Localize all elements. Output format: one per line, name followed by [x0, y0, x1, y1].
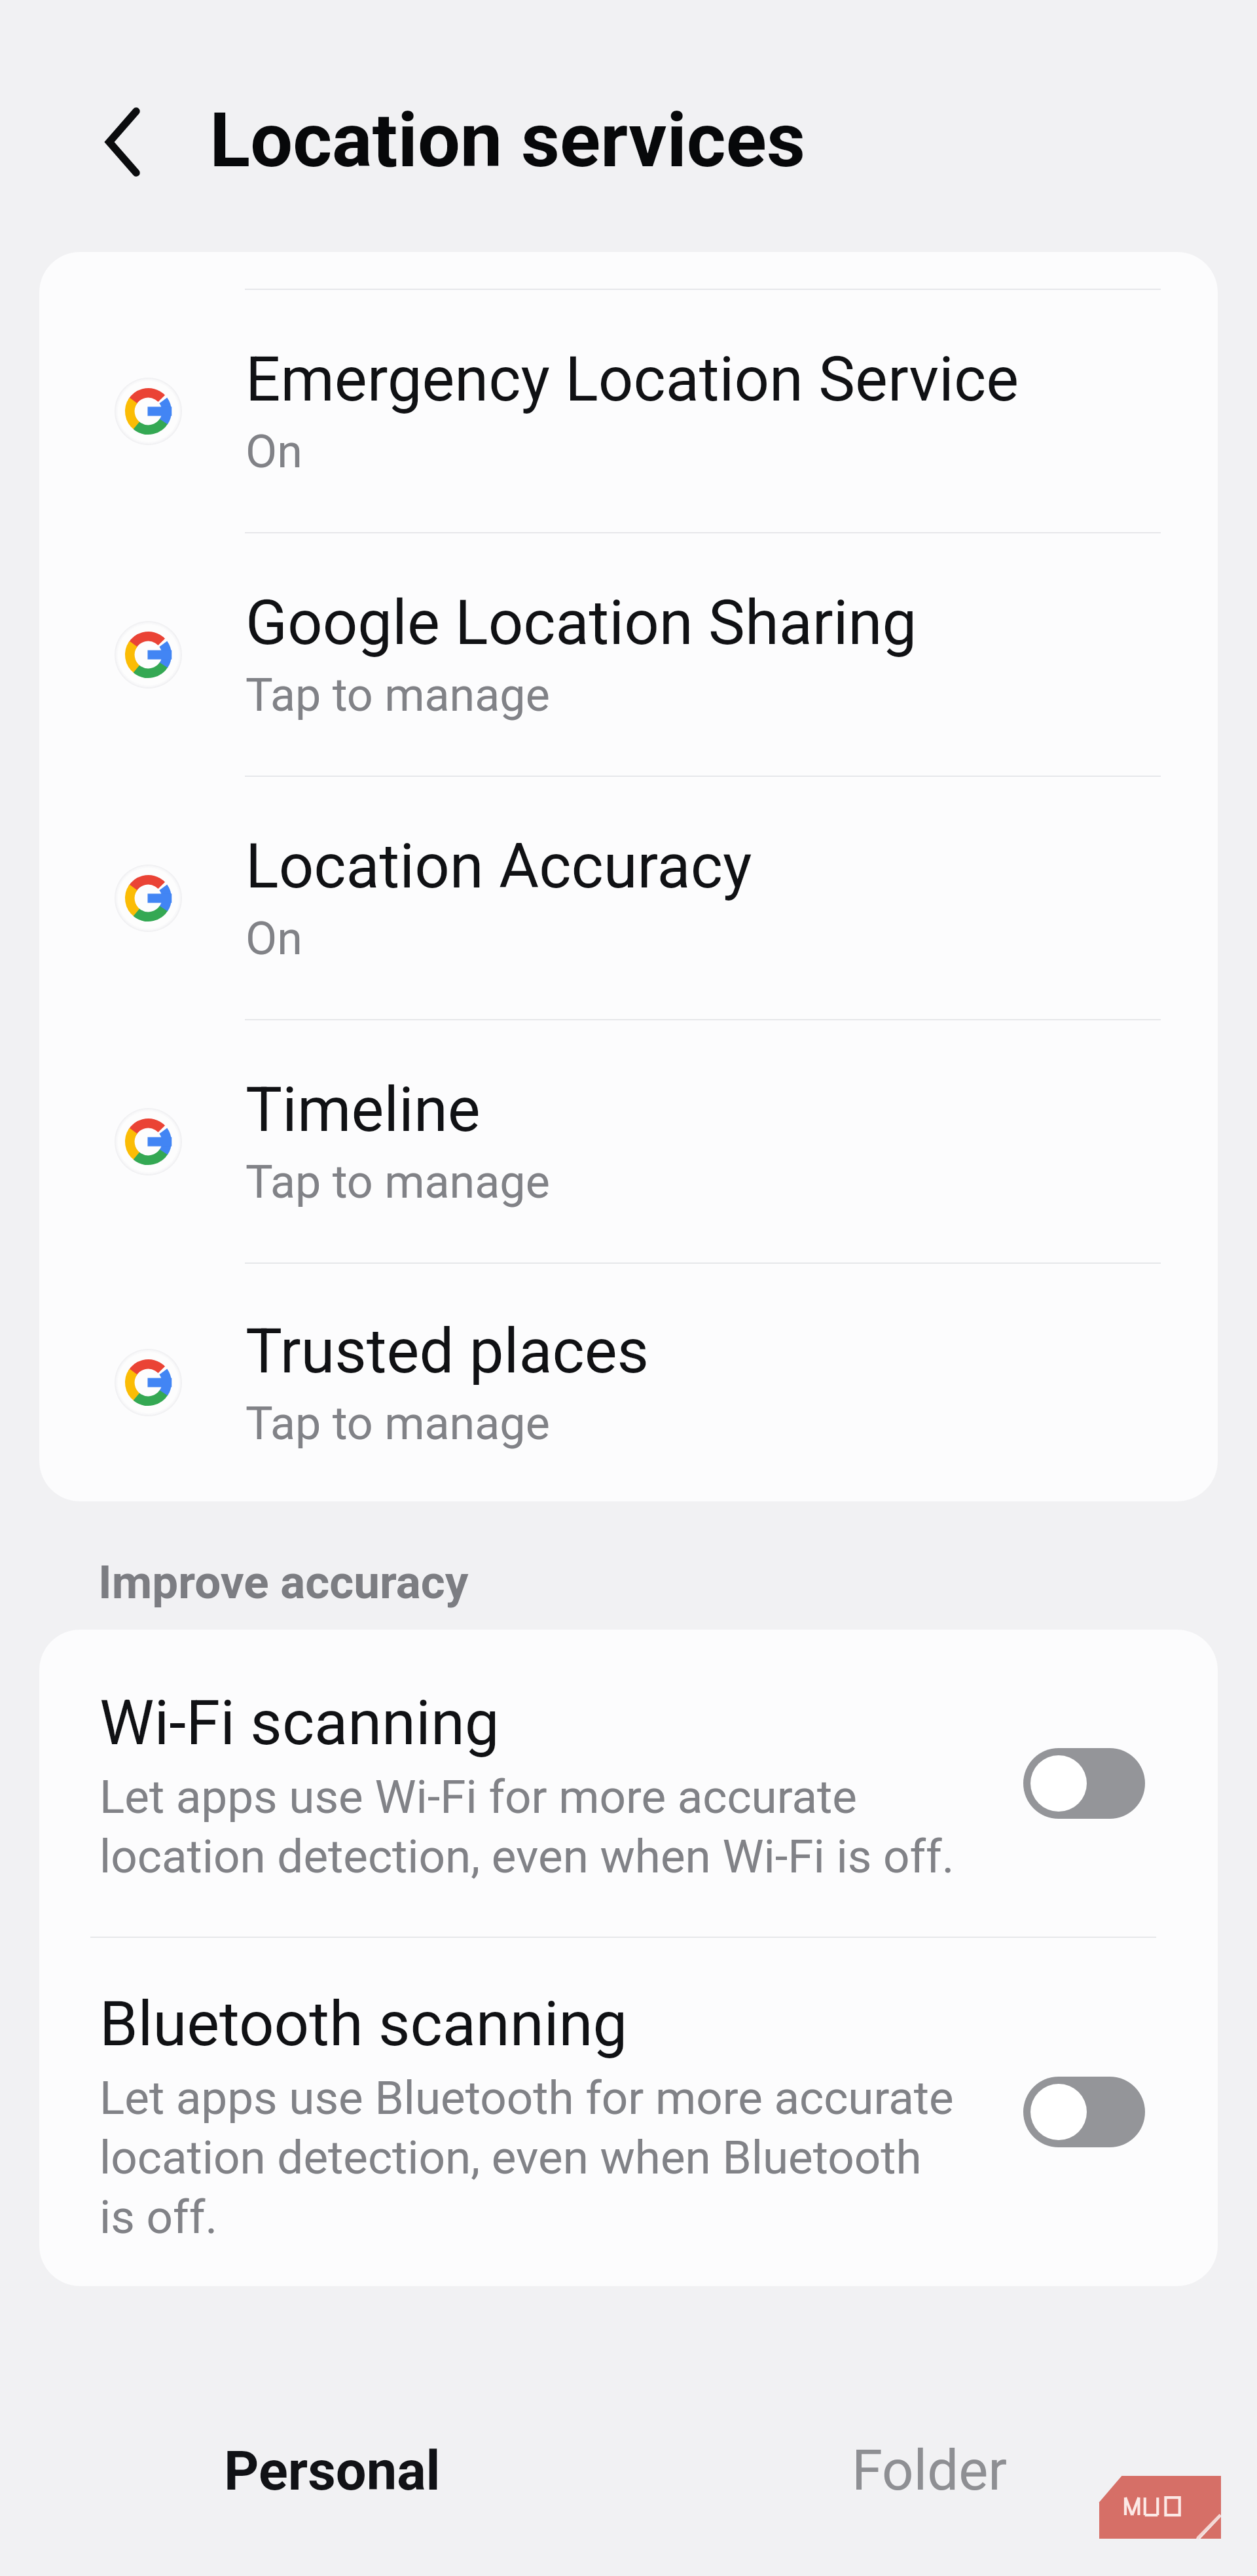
- staticText: Personal: [224, 2439, 441, 2503]
- staticText: Emergency Location Service: [246, 344, 1019, 416]
- button[interactable]: Google Location Sharing: [39, 533, 1218, 776]
- button[interactable]: Folder: [665, 2376, 1195, 2566]
- staticText: Location services: [209, 96, 805, 185]
- button[interactable]: Wi-Fi scanning: [39, 1630, 1218, 1937]
- staticText: Location Accuracy: [246, 831, 752, 903]
- staticText: Trusted places: [246, 1315, 649, 1387]
- staticText: Tap to manage: [246, 1395, 550, 1450]
- staticText: Let apps use Bluetooth for more accurate…: [100, 2067, 954, 2245]
- button[interactable]: Location Accuracy: [39, 777, 1218, 1019]
- button[interactable]: Trusted places: [39, 1264, 1218, 1501]
- button[interactable]: Bluetooth scanning: [1023, 2077, 1145, 2147]
- staticText: Timeline: [246, 1074, 481, 1146]
- button[interactable]: Personal: [0, 2376, 665, 2566]
- button[interactable]: Back: [77, 96, 168, 187]
- button[interactable]: Timeline: [39, 1020, 1218, 1262]
- button[interactable]: Bluetooth scanning: [39, 1938, 1218, 2286]
- staticText: Improve accuracy: [98, 1554, 469, 1609]
- staticText: Tap to manage: [246, 667, 550, 722]
- button[interactable]: Wi-Fi scanning: [1023, 1748, 1145, 1819]
- staticText: Bluetooth scanning: [100, 1988, 628, 2060]
- staticText: On: [246, 910, 302, 965]
- button[interactable]: Emergency Location Service: [39, 290, 1218, 532]
- staticText: Google Location Sharing: [246, 587, 917, 659]
- staticText: Tap to manage: [246, 1154, 550, 1209]
- staticText: Folder: [852, 2439, 1008, 2503]
- staticText: Wi-Fi scanning: [100, 1687, 500, 1759]
- staticText: On: [246, 423, 302, 478]
- staticText: Let apps use Wi-Fi for more accurate loc…: [100, 1766, 955, 1885]
